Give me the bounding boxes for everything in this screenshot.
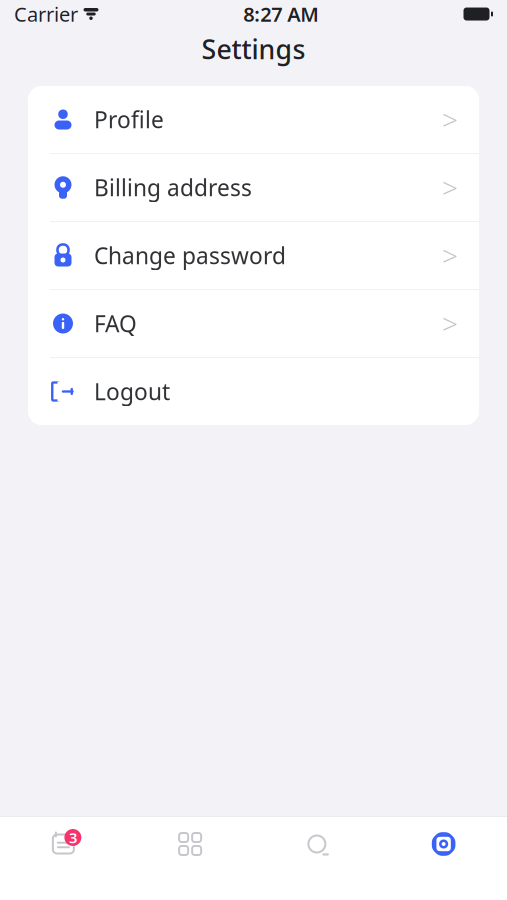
staticText: Logout [94, 376, 170, 406]
staticText: > [442, 237, 458, 274]
button[interactable]: Search [253, 817, 380, 871]
staticText: Billing address [94, 172, 252, 202]
button[interactable]: Change password [28, 222, 479, 289]
button[interactable]: Dashboard [127, 817, 254, 871]
staticText: Settings [201, 31, 305, 67]
staticText: > [442, 305, 458, 342]
staticText: Carrier [14, 1, 78, 27]
button[interactable]: Logout [28, 358, 479, 425]
staticText: 3 [69, 828, 77, 847]
staticText: Profile [94, 104, 164, 134]
staticText: FAQ [94, 308, 137, 338]
staticText: 8:27 AM [243, 1, 319, 27]
staticText: > [442, 101, 458, 138]
staticText: > [442, 169, 458, 206]
button[interactable]: Profile [28, 86, 479, 153]
button[interactable]: FAQ [28, 290, 479, 357]
staticText: Change password [94, 240, 286, 270]
button[interactable]: Billing address [28, 154, 479, 221]
button[interactable]: Calendar, 3 new items [0, 817, 127, 871]
button[interactable]: Settings [380, 817, 507, 871]
